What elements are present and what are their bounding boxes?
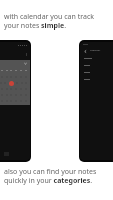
- button[interactable]: [80, 69, 113, 76]
- staticText: also you can find your notes quickly in …: [4, 167, 97, 185]
- staticText: with calendar you can track your notes s…: [4, 12, 94, 30]
- button[interactable]: [80, 76, 113, 83]
- button[interactable]: [80, 55, 113, 62]
- button[interactable]: Back: [83, 49, 87, 53]
- button[interactable]: [80, 62, 113, 69]
- staticText: Categories: [90, 49, 100, 52]
